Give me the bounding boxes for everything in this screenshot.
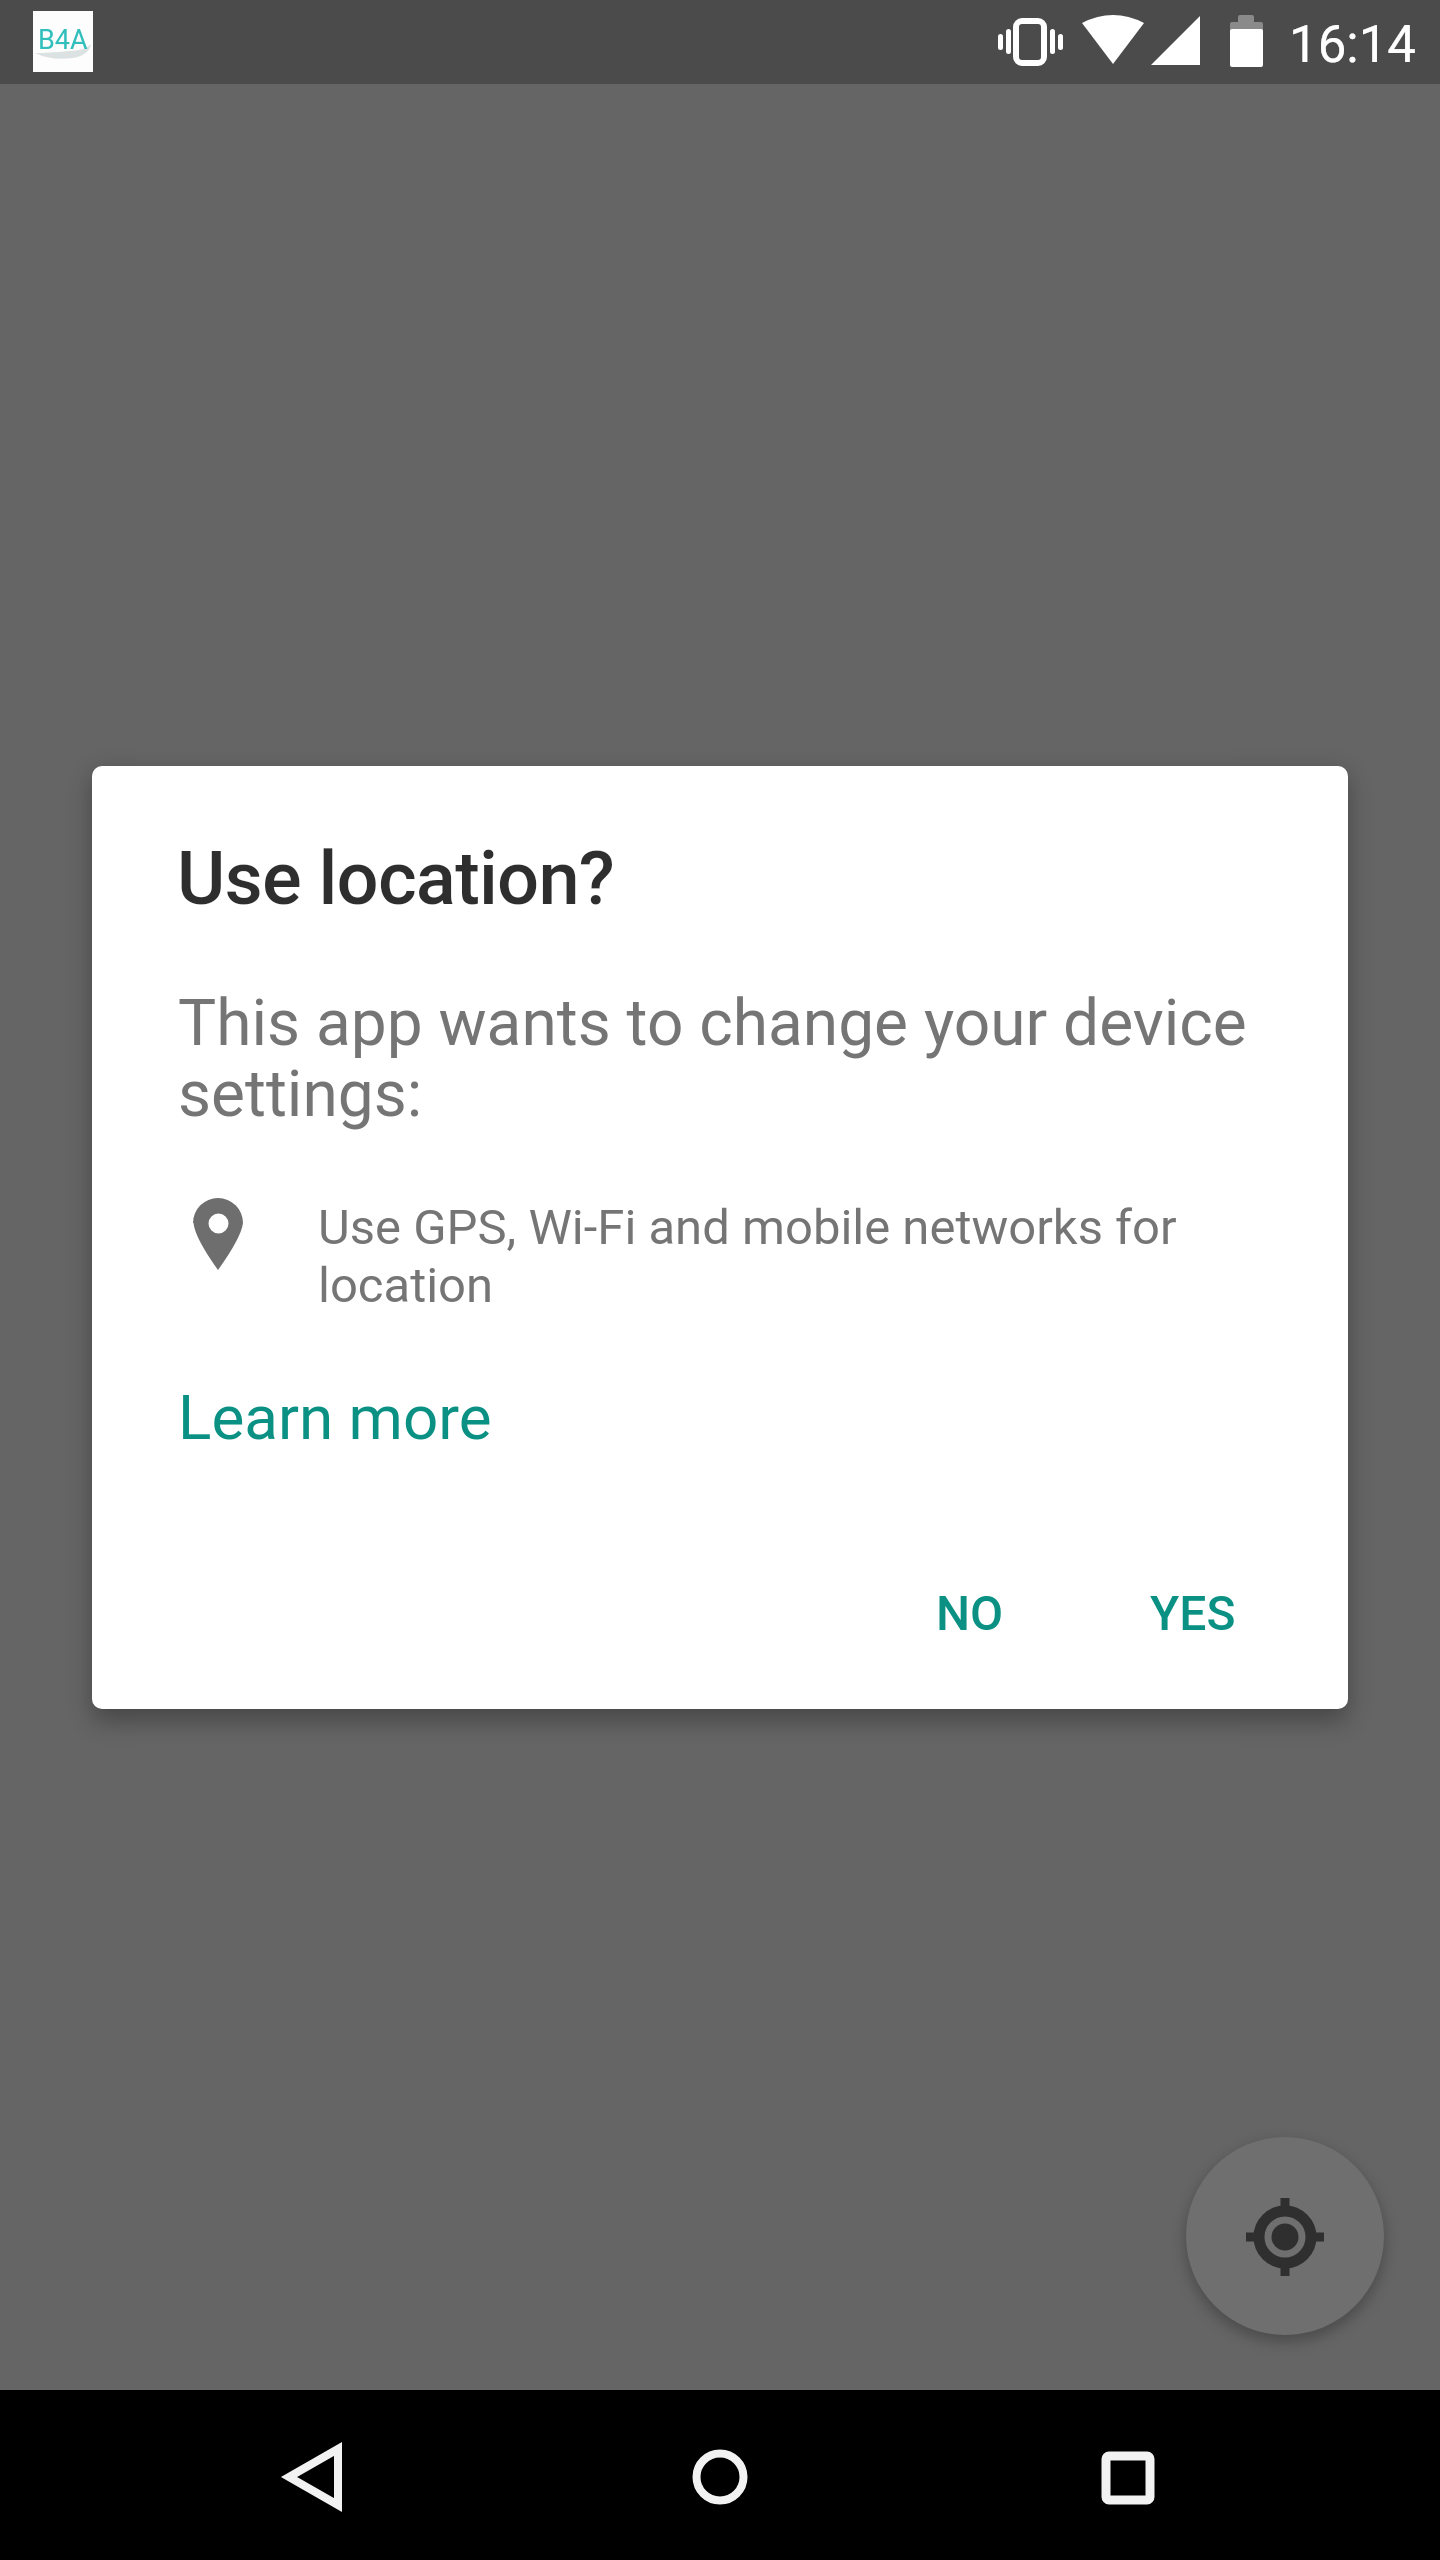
button[interactable] xyxy=(1186,2137,1384,2335)
staticText: NO xyxy=(936,1585,1004,1641)
button[interactable]: YES xyxy=(1103,1553,1283,1673)
button[interactable]: Learn more xyxy=(148,1352,468,1462)
button[interactable] xyxy=(650,2407,790,2547)
staticText: Learn more xyxy=(178,1381,492,1454)
staticText: Use GPS, Wi-Fi and mobile networks for xyxy=(318,1199,1177,1256)
staticText: YES xyxy=(1150,1585,1236,1641)
button[interactable] xyxy=(1057,2407,1197,2547)
staticText: B4A xyxy=(38,24,88,56)
button[interactable] xyxy=(245,2407,385,2547)
staticText: This app wants to change your device xyxy=(178,986,1247,1061)
staticText: settings: xyxy=(178,1057,423,1132)
staticText: 16:14 xyxy=(1289,15,1417,75)
button[interactable]: NO xyxy=(890,1553,1050,1673)
staticText: Use location? xyxy=(177,835,615,922)
staticText: location xyxy=(318,1257,494,1314)
